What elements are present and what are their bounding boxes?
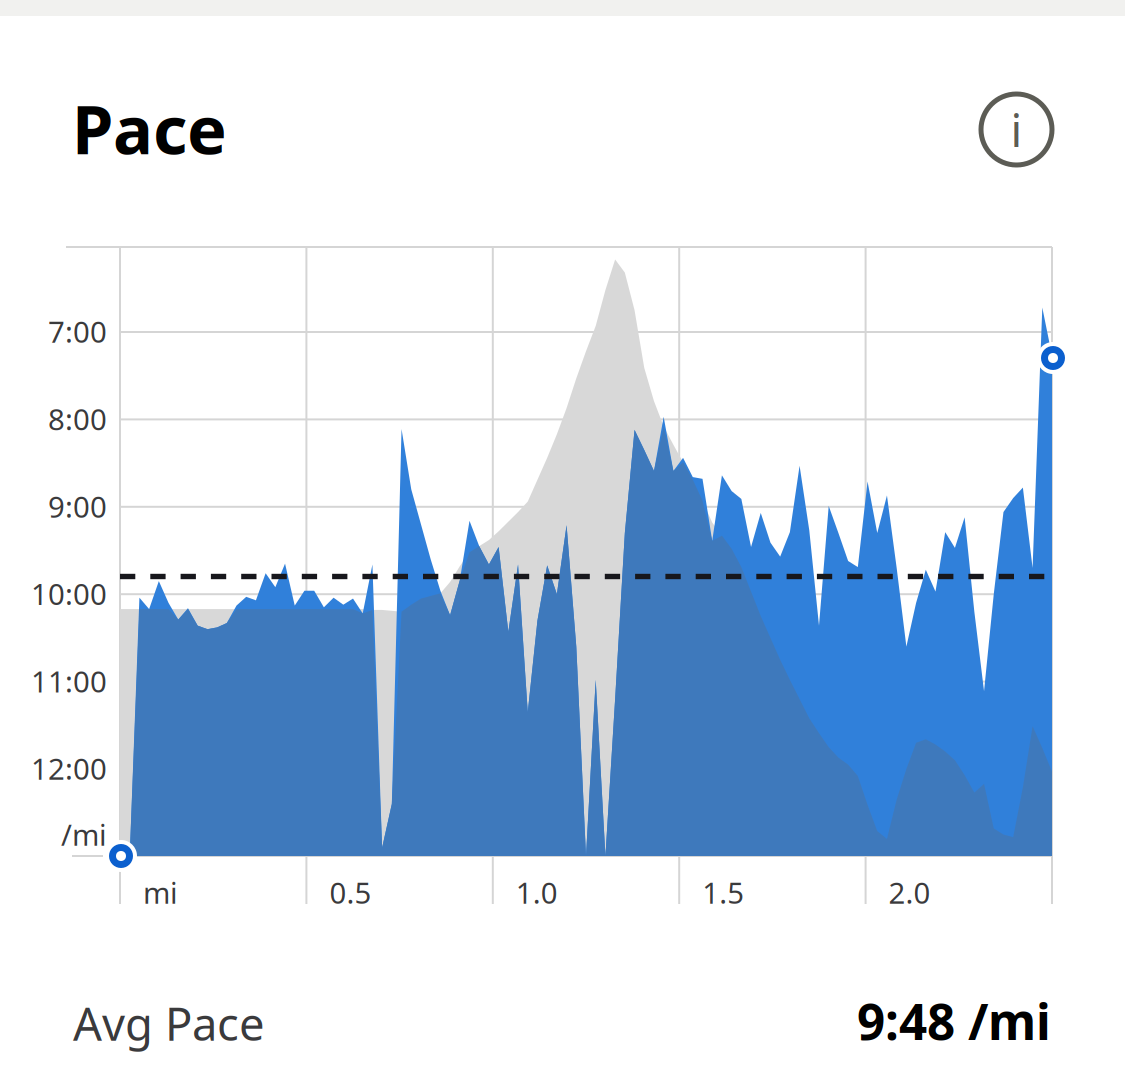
staticText: 9:48 /mi	[857, 988, 1051, 1053]
staticText: 1.0	[516, 873, 558, 912]
staticText: 1.5	[702, 873, 744, 912]
staticText: Pace	[72, 84, 227, 172]
staticText: 10:00	[31, 574, 107, 613]
button[interactable]: Info	[981, 94, 1052, 165]
staticText: Avg Pace	[73, 993, 265, 1053]
staticText: mi	[143, 873, 178, 912]
staticText: 0.5	[329, 873, 371, 912]
staticText: 2.0	[889, 873, 931, 912]
staticText: 9:00	[48, 487, 107, 526]
staticText: /mi	[61, 815, 107, 854]
staticText: 11:00	[31, 662, 107, 701]
staticText: 12:00	[31, 749, 107, 788]
staticText: 7:00	[48, 312, 107, 351]
staticText: i	[1010, 99, 1022, 160]
staticText: 8:00	[48, 399, 107, 438]
